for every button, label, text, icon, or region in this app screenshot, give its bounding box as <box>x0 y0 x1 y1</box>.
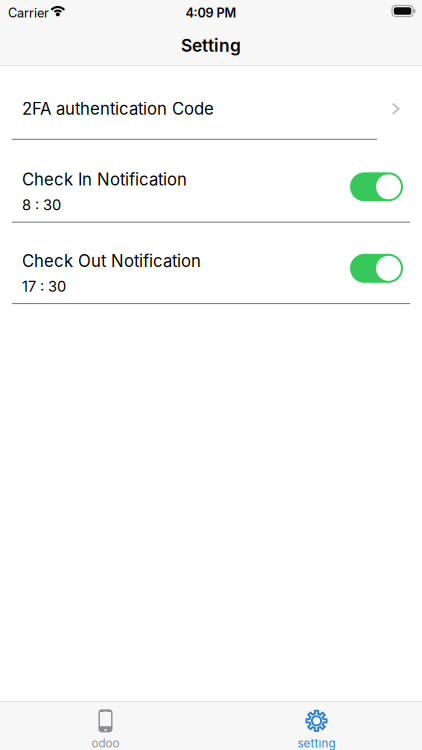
staticText: Check Out Notification <box>22 251 201 271</box>
staticText: 17 : 30 <box>22 277 66 295</box>
button[interactable]: odoo <box>0 702 211 750</box>
staticText: 2FA authentication Code <box>22 99 214 119</box>
staticText: Carrier <box>8 5 49 21</box>
button[interactable]: Check In Notification <box>350 169 403 201</box>
staticText: Setting <box>181 35 241 56</box>
staticText: setting <box>297 736 335 750</box>
staticText: 4:09 PM <box>185 5 236 21</box>
staticText: odoo <box>91 736 119 750</box>
staticText: 8 : 30 <box>22 196 61 214</box>
button[interactable]: setting <box>211 702 422 750</box>
staticText: Check In Notification <box>22 169 187 189</box>
button[interactable]: Check Out Notification <box>350 251 403 283</box>
button[interactable]: 2FA authentication Code <box>0 66 422 140</box>
